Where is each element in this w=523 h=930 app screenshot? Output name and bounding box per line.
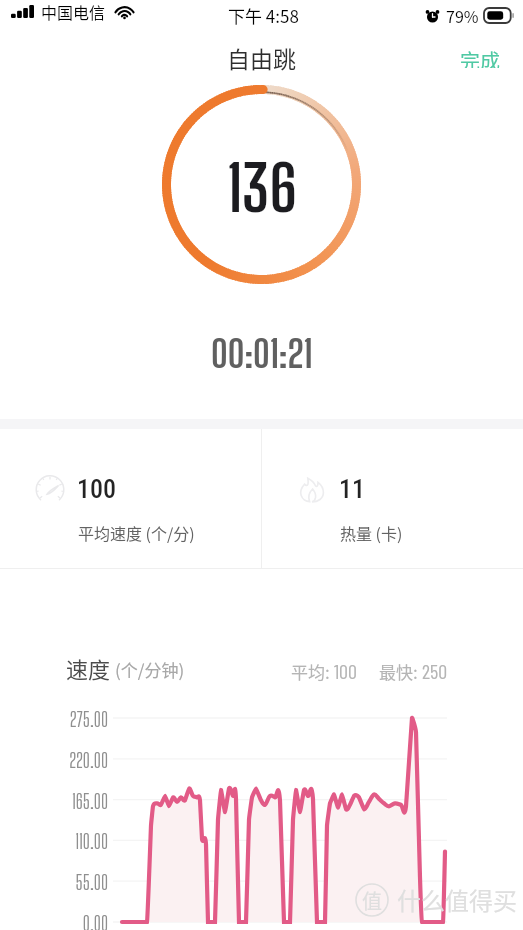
staticText: 完成 bbox=[460, 46, 500, 68]
staticText: 最快: bbox=[379, 659, 422, 684]
button[interactable]: 完成 bbox=[440, 38, 523, 76]
staticText: 55.00 bbox=[46, 871, 108, 894]
staticText: 250 bbox=[422, 659, 448, 683]
staticText: 平均速度 (个/分) bbox=[78, 521, 195, 544]
staticText: 下午 4:58 bbox=[228, 3, 299, 28]
staticText: 110.00 bbox=[46, 830, 108, 853]
staticText: 00:01:21 bbox=[211, 331, 313, 375]
button[interactable]: 100 bbox=[0, 429, 261, 568]
staticText: 165.00 bbox=[46, 790, 108, 813]
staticText: 220.00 bbox=[46, 749, 108, 772]
staticText: 中国电信 bbox=[41, 0, 106, 23]
staticText: 自由跳 bbox=[227, 41, 296, 74]
staticText: 速度 bbox=[66, 652, 111, 684]
staticText: 11 bbox=[339, 474, 365, 504]
staticText: 100 bbox=[77, 474, 116, 504]
staticText: 平均: bbox=[291, 659, 334, 684]
staticText: 136 bbox=[227, 150, 297, 225]
staticText: (个/分钟) bbox=[115, 657, 185, 682]
staticText: 275.00 bbox=[46, 708, 108, 731]
staticText: 79% bbox=[446, 4, 479, 27]
staticText: 0.00 bbox=[46, 912, 108, 930]
staticText: 热量 (卡) bbox=[340, 521, 403, 544]
staticText: 100 bbox=[334, 659, 357, 683]
staticText: 值 bbox=[362, 886, 382, 915]
button[interactable]: 11 bbox=[262, 429, 523, 568]
staticText: 什么值得买 bbox=[397, 882, 517, 917]
